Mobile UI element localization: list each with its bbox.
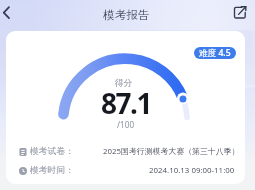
button[interactable]: 模考时间： xyxy=(19,165,235,176)
staticText: 模考报告 xyxy=(103,8,150,23)
staticText: 难度 4.5 xyxy=(199,47,231,59)
staticText: 模考试卷： xyxy=(30,146,74,157)
button[interactable]: Back xyxy=(0,0,24,29)
button[interactable]: 模考试卷： xyxy=(19,146,240,157)
staticText: 87.1 xyxy=(101,84,151,122)
staticText: 2024.10.13 09:00-11:00 xyxy=(149,165,235,176)
staticText: 得分 xyxy=(115,78,133,89)
button[interactable]: 难度 4.5 xyxy=(194,47,236,59)
staticText: 2025国考行测模考大赛（第三十八季） xyxy=(103,146,240,157)
button[interactable]: Share xyxy=(231,0,255,26)
staticText: 模考时间： xyxy=(30,165,74,176)
staticText: /100 xyxy=(117,119,135,130)
